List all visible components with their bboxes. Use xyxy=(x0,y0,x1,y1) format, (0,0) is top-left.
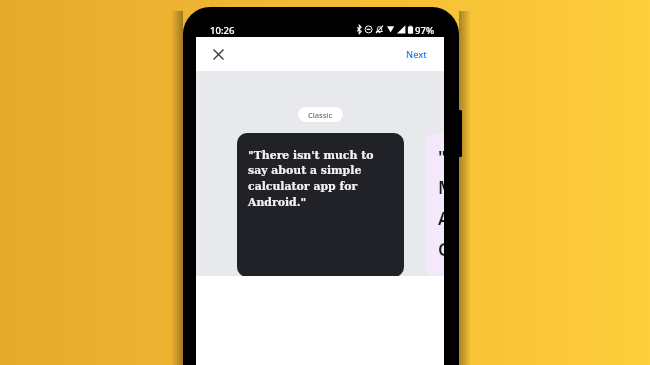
staticText: 10:26 xyxy=(210,24,235,37)
button[interactable]: Classic xyxy=(298,107,343,122)
staticText: "There isn't much to say about a simple … xyxy=(248,149,374,209)
staticText: "It just works. Makes doing Android math… xyxy=(438,145,444,261)
button[interactable]: "There isn't much to say about a simple … xyxy=(237,133,404,276)
staticText: 97% xyxy=(415,24,435,37)
button[interactable]: "It just works. Makes doing Android math… xyxy=(425,133,444,276)
button[interactable]: Next xyxy=(392,40,444,69)
staticText: Next xyxy=(406,48,427,61)
staticText: Classic xyxy=(308,110,333,120)
button[interactable]: Close xyxy=(204,40,232,68)
